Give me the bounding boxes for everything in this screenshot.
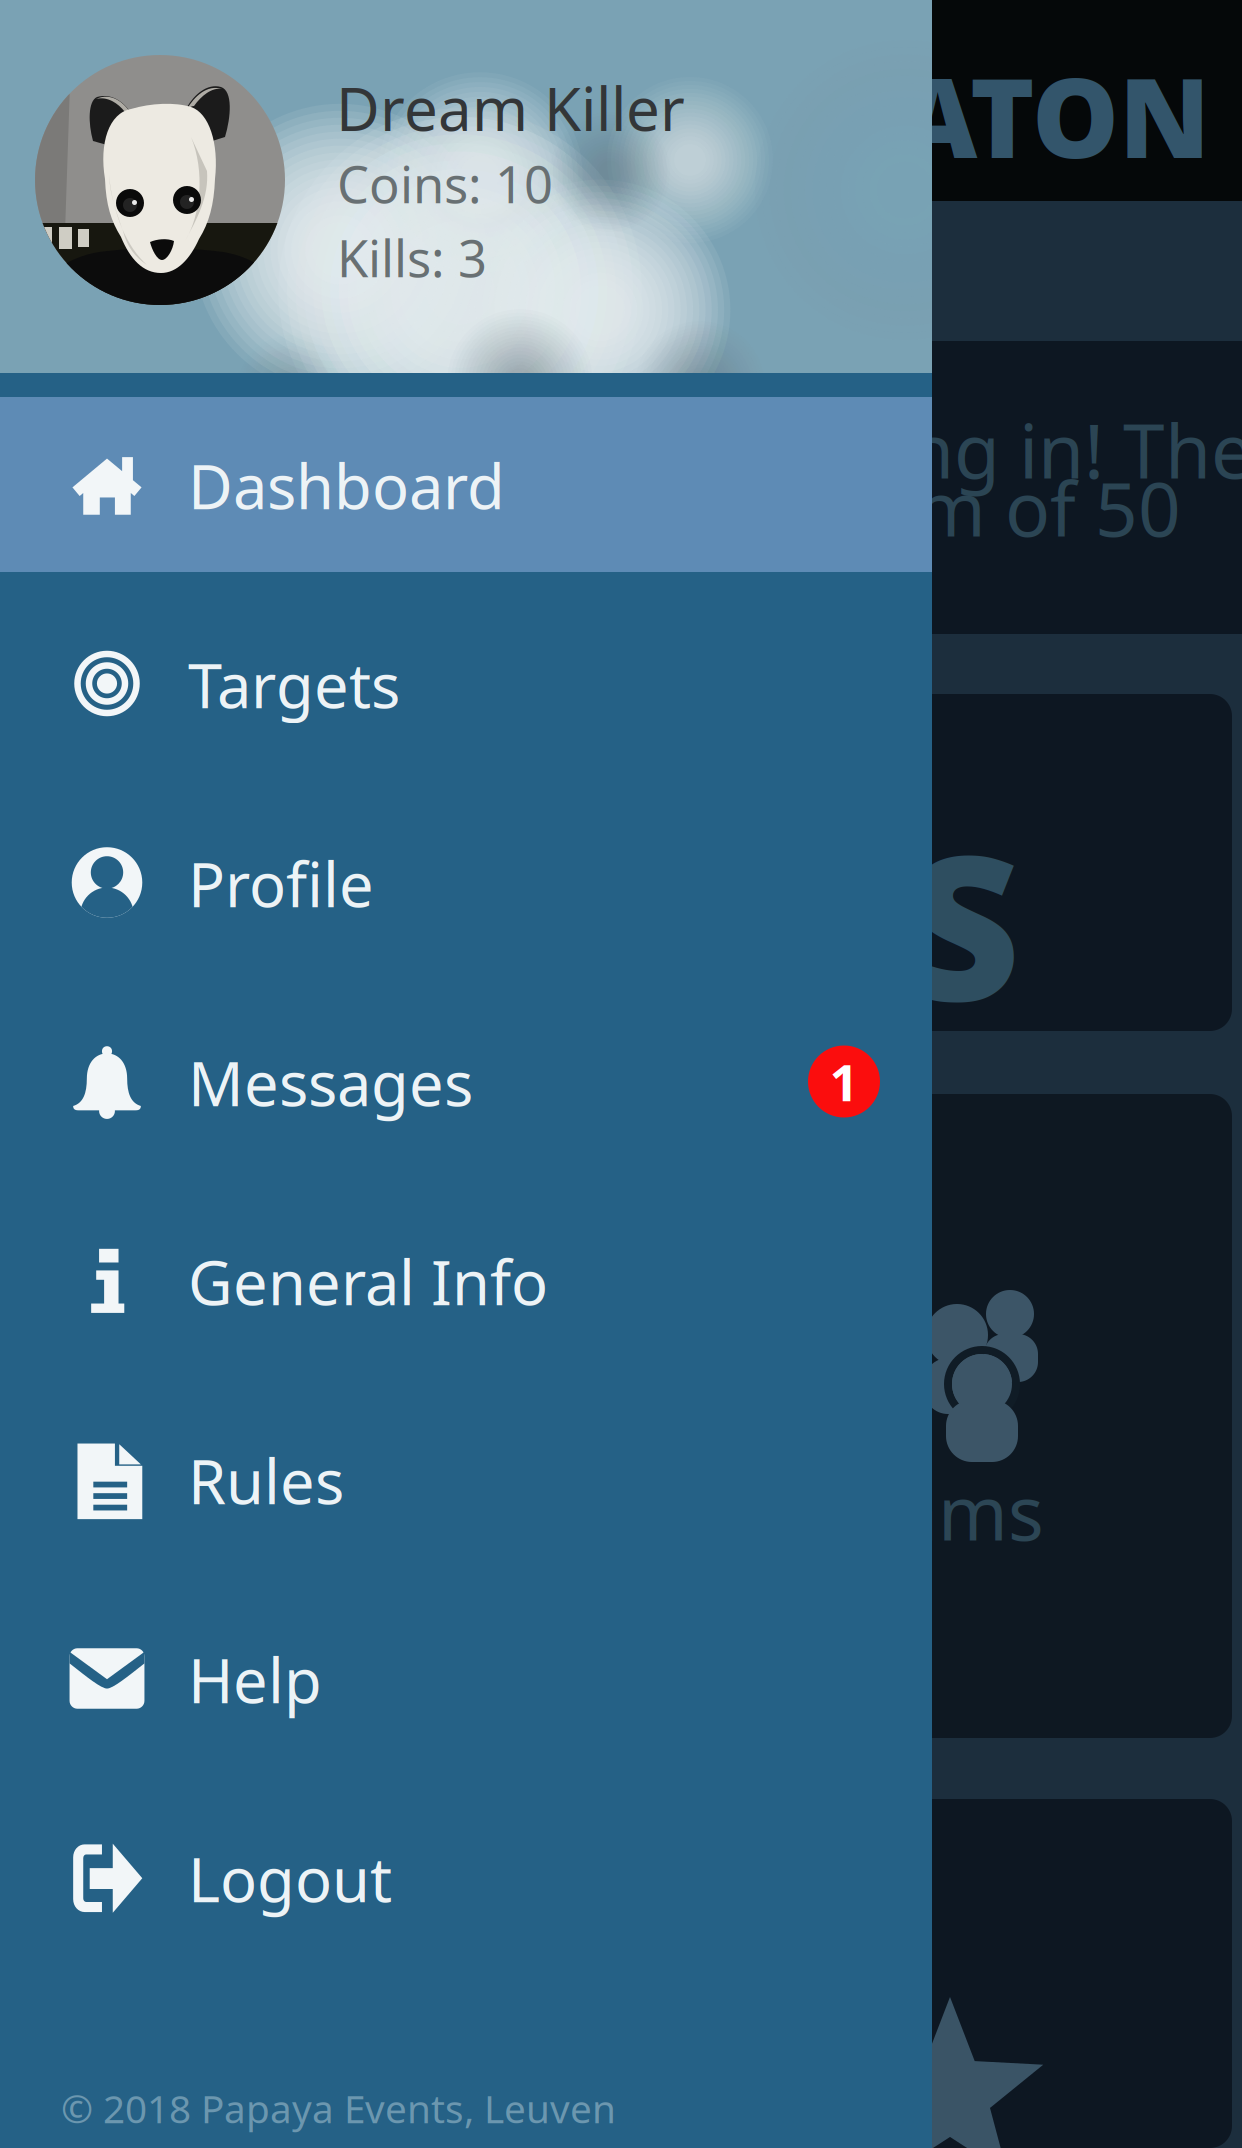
staticText: maximum of 50 (630, 458, 1181, 557)
button[interactable]: General Info (0, 1193, 932, 1368)
button[interactable]: Dream Killer (0, 0, 932, 373)
staticText: Dream Killer (336, 68, 685, 148)
staticText: Help (188, 1639, 322, 1720)
staticText: Coins: 10 (337, 150, 553, 217)
staticText: Messages (188, 1042, 473, 1123)
staticText: General Info (188, 1241, 548, 1322)
button[interactable]: Rules (0, 1392, 932, 1567)
staticText: Profile (188, 843, 374, 924)
staticText: S (905, 790, 1020, 1056)
staticText: Rules (188, 1440, 344, 1521)
button[interactable]: Profile (0, 795, 932, 970)
staticText: …checking in! The (630, 400, 1242, 499)
staticText: © 2018 Papaya Events, Leuven (61, 2083, 616, 2134)
button[interactable]: Messages (0, 994, 932, 1169)
staticText: Logout (188, 1838, 392, 1919)
staticText: ATON (898, 43, 1210, 188)
staticText: 1 (829, 1048, 858, 1115)
staticText: Targets (188, 644, 400, 725)
button[interactable]: Logout (0, 1790, 932, 1965)
button[interactable]: Help (0, 1591, 932, 1766)
staticText: Dashboard (188, 445, 505, 526)
button[interactable]: Dashboard (0, 397, 932, 572)
button[interactable]: Targets (0, 596, 932, 771)
staticText: Teams (818, 1462, 1044, 1561)
staticText: Kills: 3 (337, 224, 487, 291)
